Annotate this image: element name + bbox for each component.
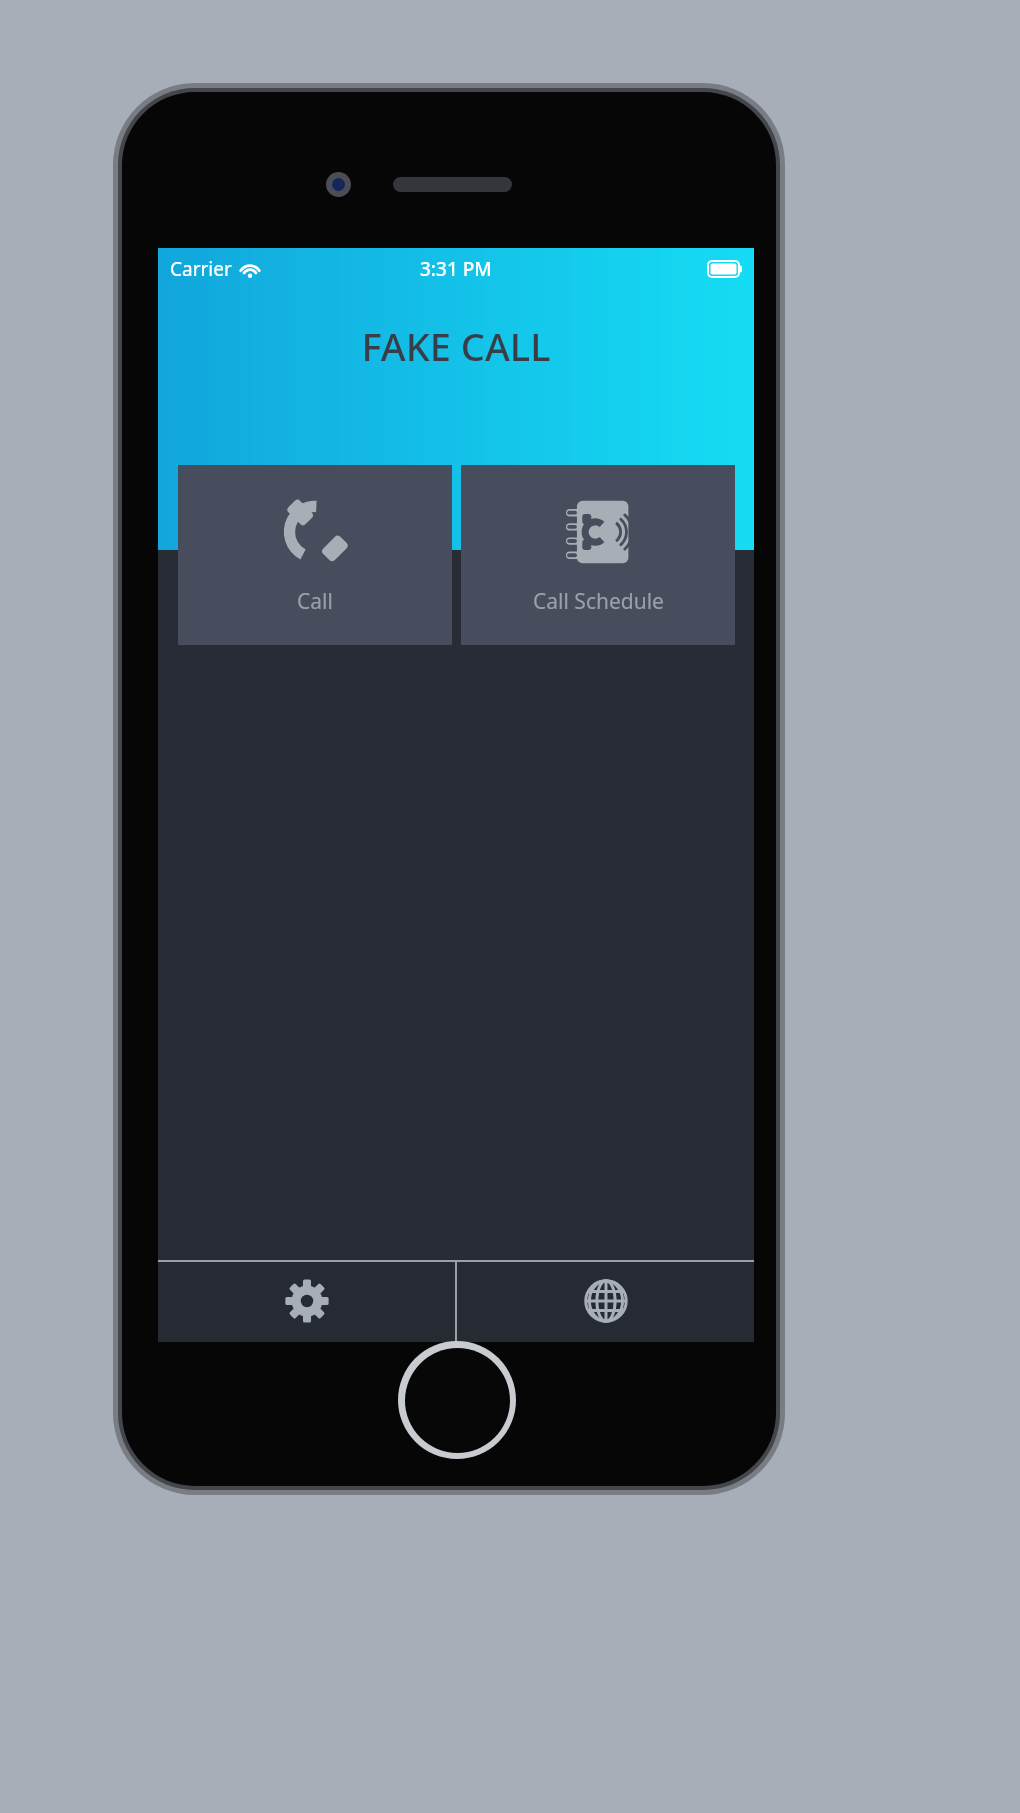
staticText: Call [297, 587, 333, 616]
button[interactable]: Web [457, 1260, 754, 1342]
staticText: Carrier [170, 256, 232, 282]
staticText: Call Schedule [533, 587, 664, 616]
button[interactable]: Call [178, 465, 452, 645]
button[interactable]: Settings [158, 1260, 455, 1342]
button[interactable]: Call Schedule [461, 465, 735, 645]
staticText: 3:31 PM [420, 256, 492, 282]
staticText: FAKE CALL [158, 320, 754, 372]
